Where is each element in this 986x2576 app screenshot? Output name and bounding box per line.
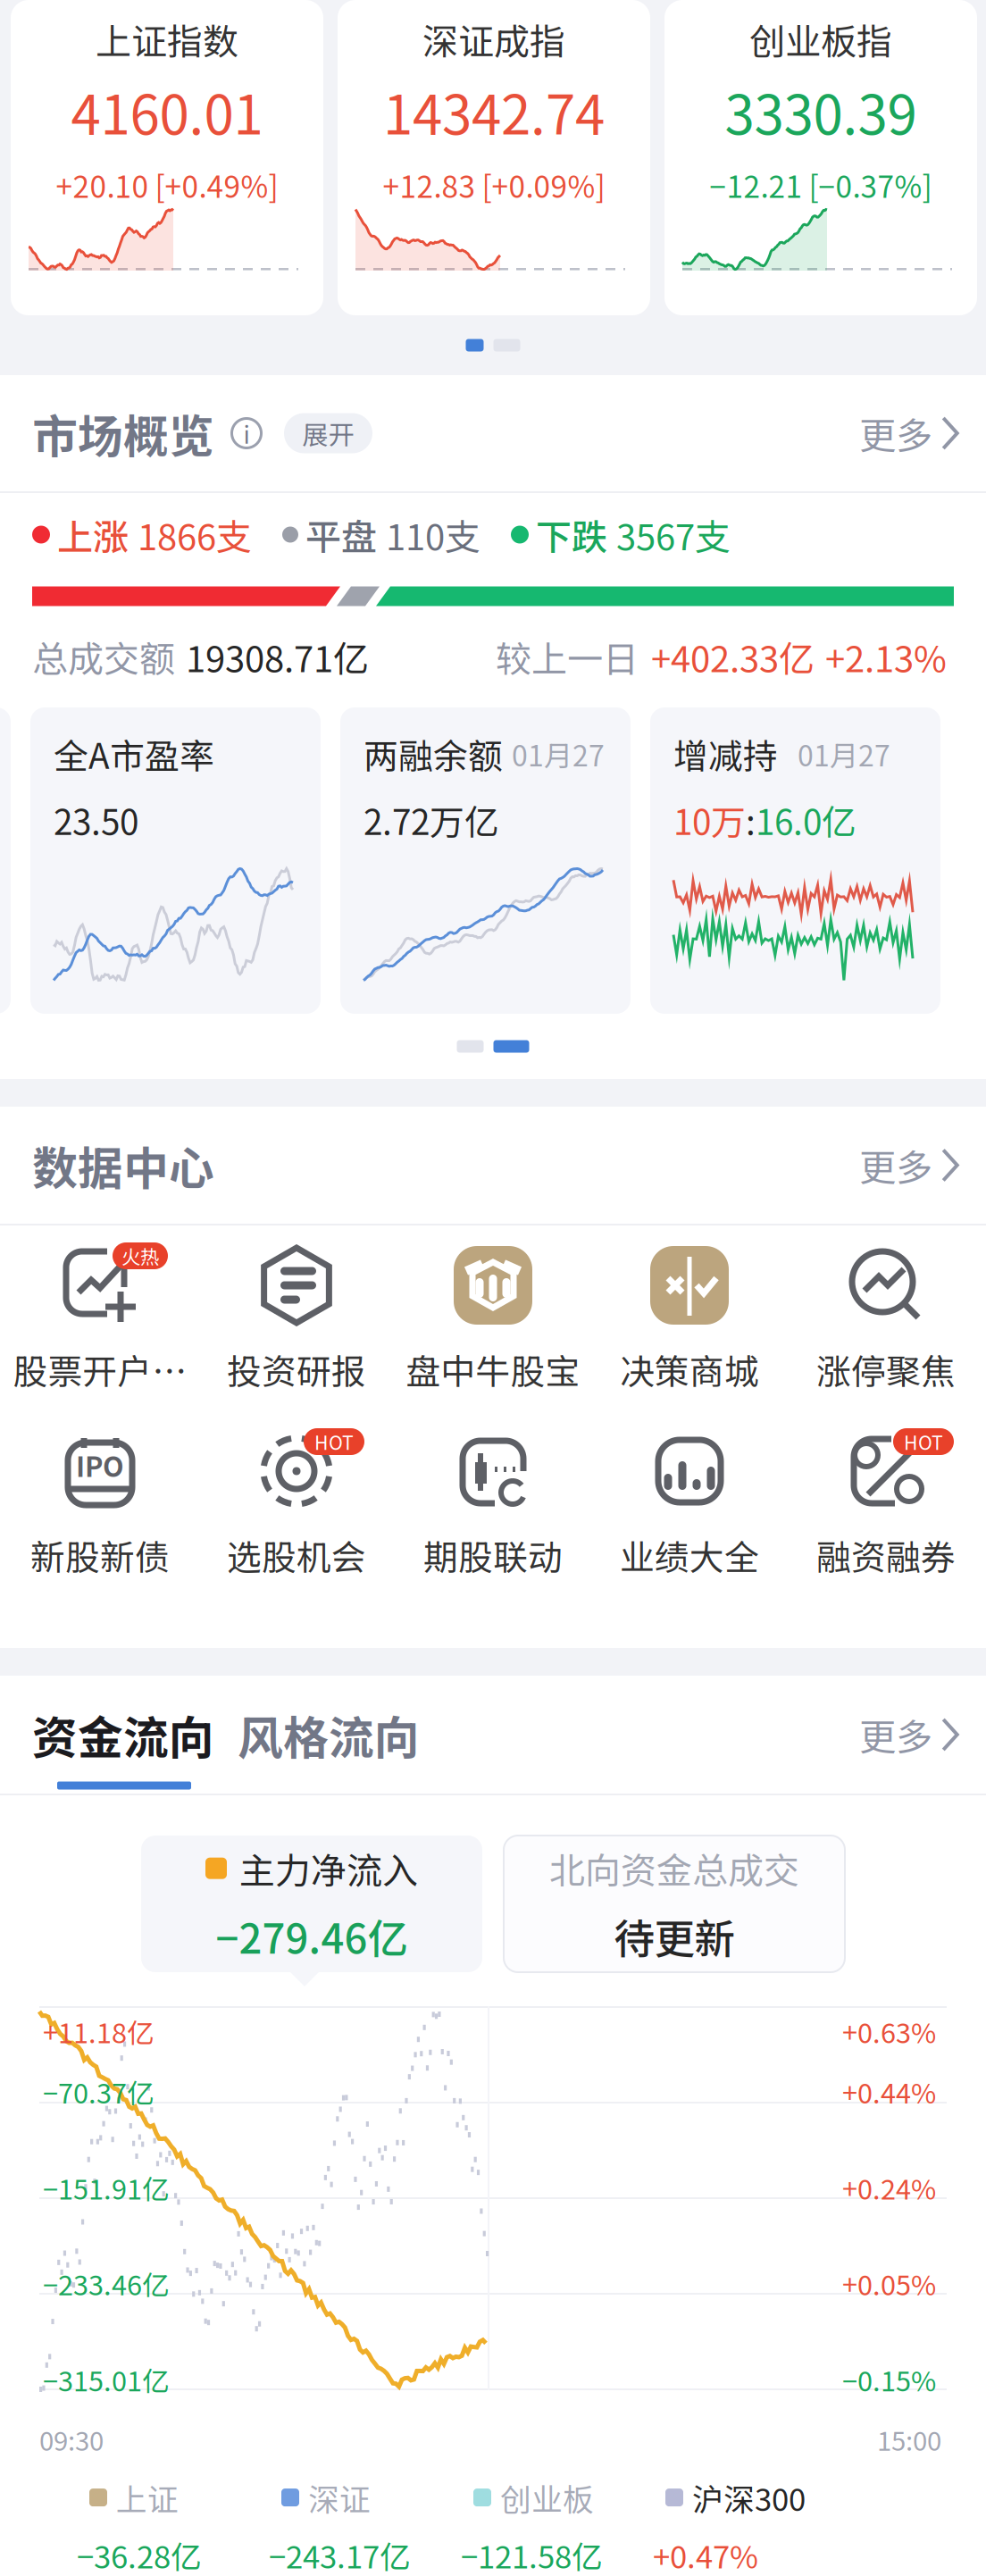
- staticText: 上证: [116, 2475, 179, 2520]
- staticText: 15:00: [877, 2420, 941, 2458]
- staticText: 融资融券: [816, 1530, 956, 1580]
- button[interactable]: 投资研报: [198, 1242, 395, 1393]
- staticText: 更多: [859, 1708, 933, 1761]
- staticText: +20.10 [+0.49%]: [56, 163, 278, 206]
- staticText: 更多: [859, 406, 933, 460]
- staticText: 上证指数: [96, 13, 238, 65]
- staticText: 资金流向: [32, 1702, 214, 1767]
- staticText: 投资研报: [227, 1344, 366, 1394]
- button[interactable]: 创业板指: [664, 0, 977, 315]
- button[interactable]: 盘中牛股宝: [395, 1242, 591, 1393]
- staticText: 数据中心: [32, 1132, 214, 1198]
- button[interactable]: 更多: [859, 1138, 959, 1192]
- button[interactable]: 更多: [859, 1708, 959, 1761]
- button[interactable]: 决策商城: [591, 1242, 788, 1393]
- staticText: +0.47%: [653, 2532, 758, 2576]
- staticText: 2.72万亿: [363, 795, 499, 845]
- staticText: 4160.01: [71, 72, 263, 150]
- staticText: 风格流向: [238, 1702, 420, 1767]
- staticText: −12.21 [−0.37%]: [710, 163, 932, 206]
- staticText: 股票开户…: [13, 1344, 187, 1394]
- staticText: 待更新: [614, 1907, 735, 1965]
- staticText: 上涨: [57, 509, 129, 560]
- staticText: 下跌: [536, 509, 607, 560]
- staticText: +402.33亿: [651, 631, 815, 682]
- staticText: −233.46亿: [43, 2264, 170, 2303]
- staticText: 16.0亿: [756, 795, 856, 845]
- staticText: 沪深300: [692, 2475, 806, 2520]
- staticText: 总成交额: [32, 631, 175, 682]
- button[interactable]: 两融余额: [340, 707, 631, 1014]
- staticText: HOT: [314, 1428, 354, 1455]
- staticText: −151.91亿: [43, 2168, 170, 2207]
- staticText: −36.28亿: [77, 2532, 202, 2576]
- button[interactable]: 增减持: [650, 707, 940, 1014]
- staticText: 主力净流入: [239, 1842, 418, 1894]
- staticText: 涨停聚焦: [816, 1344, 956, 1394]
- staticText: 增减持: [673, 729, 778, 779]
- staticText: +2.13%: [825, 631, 947, 682]
- staticText: 10万: [673, 795, 746, 845]
- staticText: 14342.74: [383, 72, 605, 150]
- staticText: 火热: [121, 1242, 159, 1270]
- staticText: −0.15%: [842, 2359, 936, 2399]
- button[interactable]: 展开: [284, 413, 372, 453]
- staticText: 展开: [302, 414, 354, 452]
- button[interactable]: 说明: [230, 416, 263, 450]
- staticText: 两融余额: [363, 729, 503, 779]
- staticText: 平盘: [305, 509, 377, 560]
- staticText: +0.44%: [842, 2072, 936, 2111]
- staticText: 1866支: [138, 509, 252, 560]
- staticText: 北向资金总成交: [549, 1842, 799, 1894]
- button[interactable]: 火热: [2, 1242, 198, 1393]
- button[interactable]: 更多: [859, 406, 959, 460]
- staticText: 23.50: [54, 795, 138, 845]
- staticText: 创业板指: [749, 13, 892, 65]
- button[interactable]: HOT: [198, 1427, 395, 1579]
- staticText: 3567支: [616, 509, 731, 560]
- staticText: 深证: [308, 2475, 371, 2520]
- button[interactable]: 全A市盈率: [30, 707, 321, 1014]
- staticText: 决策商城: [620, 1344, 759, 1394]
- staticText: 新股新债: [30, 1530, 170, 1580]
- button[interactable]: 期股联动: [395, 1427, 591, 1579]
- staticText: 09:30: [39, 2420, 104, 2458]
- button[interactable]: 业绩大全: [591, 1427, 788, 1579]
- staticText: 业绩大全: [620, 1530, 759, 1580]
- staticText: −70.37亿: [43, 2072, 155, 2111]
- staticText: 全A市盈率: [54, 729, 214, 779]
- staticText: 创业板: [500, 2475, 594, 2520]
- staticText: 3330.39: [725, 72, 917, 150]
- button[interactable]: 资金流向: [32, 1702, 214, 1767]
- staticText: 19308.71亿: [186, 631, 369, 682]
- staticText: 期股联动: [423, 1530, 563, 1580]
- staticText: HOT: [904, 1428, 943, 1455]
- staticText: −279.46亿: [216, 1907, 408, 1965]
- button[interactable]: 涨停聚焦: [788, 1242, 984, 1393]
- staticText: +11.18亿: [43, 2011, 155, 2051]
- staticText: 110支: [386, 509, 480, 560]
- staticText: IPO: [76, 1445, 124, 1485]
- staticText: 深证成指: [422, 13, 565, 65]
- staticText: 选股机会: [227, 1530, 366, 1580]
- staticText: +0.05%: [842, 2264, 936, 2303]
- staticText: −121.58亿: [461, 2532, 603, 2576]
- button[interactable]: HOT: [788, 1427, 984, 1579]
- staticText: :: [746, 795, 756, 845]
- staticText: −315.01亿: [43, 2359, 170, 2399]
- button[interactable]: 深证成指: [338, 0, 650, 315]
- button[interactable]: 北向资金总成交: [504, 1836, 845, 1972]
- button[interactable]: IPO: [2, 1427, 198, 1579]
- staticText: 01月27: [512, 733, 605, 774]
- staticText: 更多: [859, 1138, 933, 1192]
- staticText: 市场概览: [32, 400, 214, 466]
- staticText: 盘中牛股宝: [406, 1344, 580, 1394]
- button[interactable]: 风格流向: [238, 1702, 420, 1767]
- staticText: +0.63%: [842, 2011, 936, 2051]
- staticText: i: [243, 416, 250, 450]
- button[interactable]: 主力净流入: [141, 1836, 482, 1972]
- staticText: 01月27: [798, 733, 890, 774]
- staticText: +0.24%: [842, 2168, 936, 2207]
- staticText: 较上一日: [496, 631, 639, 682]
- button[interactable]: 上证指数: [11, 0, 323, 315]
